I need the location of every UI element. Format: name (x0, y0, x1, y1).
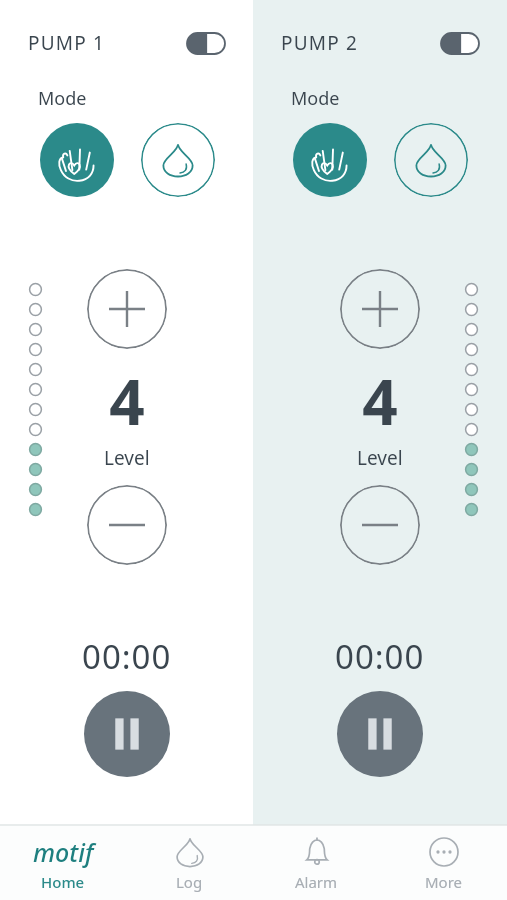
button[interactable]: Increase level (340, 269, 420, 349)
staticText: PUMP 1 (28, 30, 106, 56)
button[interactable]: Alarm (253, 826, 380, 900)
staticText: Home (41, 872, 85, 892)
button[interactable]: motif (0, 826, 126, 900)
button[interactable]: Auto mode (394, 123, 468, 197)
button[interactable]: Pause (84, 691, 170, 777)
button[interactable]: Increase level (87, 269, 167, 349)
staticText: 4 (362, 359, 398, 443)
staticText: Log (176, 872, 203, 892)
staticText: Alarm (295, 872, 338, 892)
button[interactable]: Pause (337, 691, 423, 777)
staticText: Level (104, 445, 150, 471)
button[interactable]: More (380, 826, 507, 900)
button[interactable]: Manual mode (40, 123, 114, 197)
staticText: Mode (38, 86, 87, 111)
staticText: motif (33, 835, 94, 869)
button[interactable]: Log (126, 826, 253, 900)
button[interactable]: Power toggle (187, 33, 225, 54)
button[interactable]: Decrease level (87, 485, 167, 565)
staticText: 4 (109, 359, 145, 443)
staticText: Level (357, 445, 403, 471)
staticText: 00:00 (335, 634, 425, 679)
staticText: PUMP 2 (281, 30, 359, 56)
staticText: Mode (291, 86, 340, 111)
button[interactable]: Auto mode (141, 123, 215, 197)
button[interactable]: Manual mode (293, 123, 367, 197)
button[interactable]: Decrease level (340, 485, 420, 565)
staticText: More (425, 872, 463, 892)
staticText: 00:00 (82, 634, 172, 679)
button[interactable]: Power toggle (441, 33, 479, 54)
